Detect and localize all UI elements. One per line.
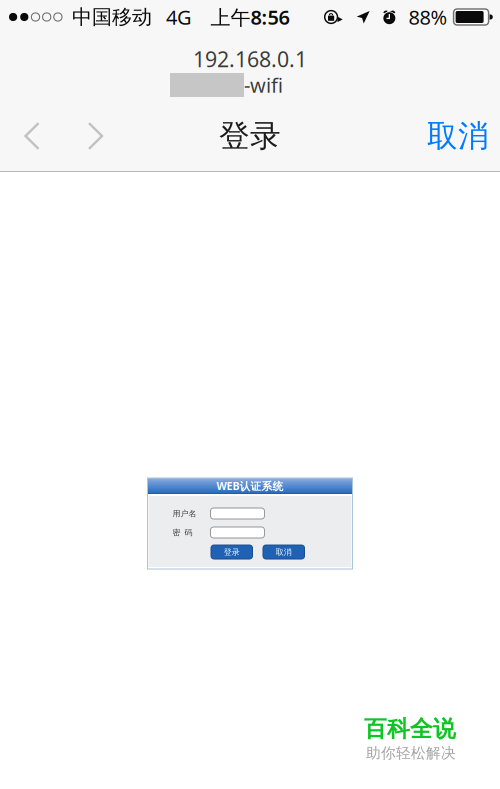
staticText: WEB认证系统	[216, 479, 283, 493]
staticText: 中国移动	[72, 5, 152, 29]
button[interactable]: 登录	[211, 545, 252, 559]
button[interactable]: 取消	[427, 111, 500, 161]
staticText: -wifi	[244, 72, 283, 98]
staticText: 助你轻松解决	[366, 744, 456, 762]
staticText: 上午8:56	[210, 4, 289, 30]
staticText: 取消	[276, 547, 292, 557]
staticText: 取消	[427, 117, 489, 155]
button[interactable]: Back	[0, 111, 64, 161]
staticText: 登录	[219, 117, 281, 155]
staticText: 百科全说	[364, 715, 456, 743]
staticText: 88%	[409, 4, 448, 30]
staticText: 用户名	[172, 509, 196, 518]
button[interactable]: 取消	[263, 545, 304, 559]
staticText: 登录	[224, 547, 240, 557]
staticText: 密 码	[172, 528, 192, 537]
staticText: 4G	[166, 4, 192, 30]
button[interactable]: Forward	[64, 111, 127, 161]
staticText: 192.168.0.1	[193, 45, 307, 73]
